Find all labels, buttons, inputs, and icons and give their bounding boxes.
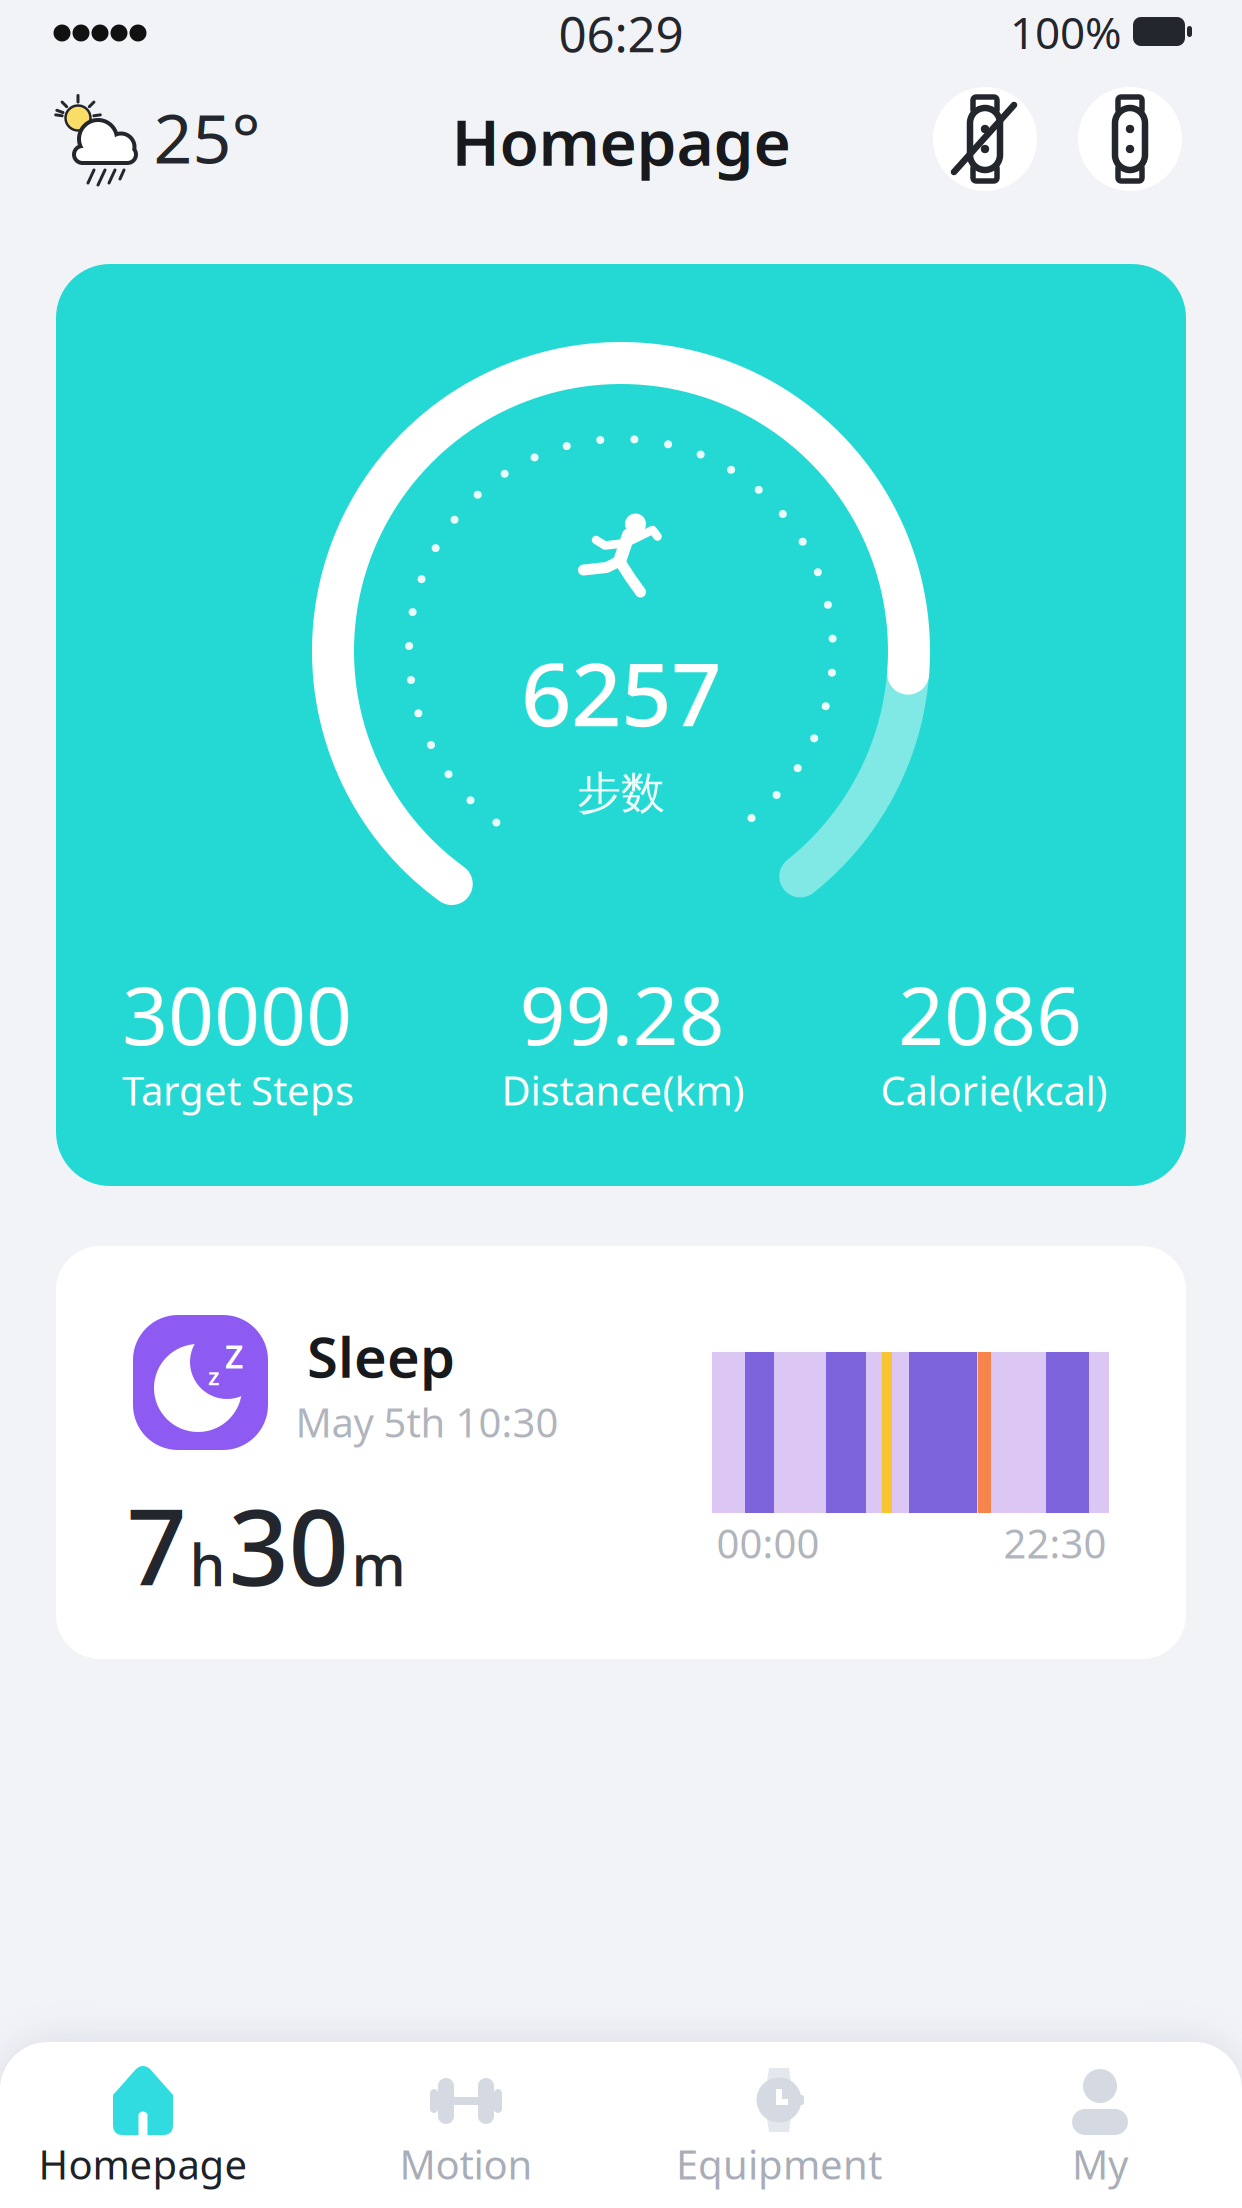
staticText: 7 — [126, 1475, 186, 1615]
staticText: Z — [225, 1335, 243, 1377]
staticText: Sleep — [307, 1319, 455, 1393]
button[interactable]: 6257 — [56, 264, 1186, 1186]
staticText: 6257 — [521, 634, 721, 750]
staticText: Homepage — [451, 98, 790, 183]
staticText: 22:30 — [1003, 1516, 1106, 1569]
staticText: Calorie(kcal) — [880, 1063, 1107, 1116]
staticText: 30000 — [122, 961, 352, 1067]
staticText: My — [1072, 2137, 1128, 2190]
staticText: Motion — [399, 2137, 532, 2190]
staticText: 2086 — [898, 961, 1082, 1067]
staticText: Target Steps — [122, 1063, 354, 1116]
button[interactable]: Homepage — [0, 2042, 310, 2208]
staticText: z — [208, 1360, 220, 1392]
button[interactable]: Disconnected band — [933, 87, 1037, 191]
staticText: 25° — [153, 92, 260, 182]
staticText: Equipment — [676, 2137, 882, 2190]
staticText: Distance(km) — [501, 1063, 744, 1116]
staticText: m — [351, 1526, 405, 1602]
button[interactable]: My — [931, 2042, 1241, 2208]
button[interactable]: Motion — [310, 2042, 620, 2208]
staticText: h — [189, 1526, 225, 1602]
button[interactable]: Band — [1078, 87, 1182, 191]
staticText: 步数 — [577, 766, 665, 820]
staticText: 30 — [228, 1475, 348, 1615]
staticText: 00:00 — [716, 1516, 819, 1569]
staticText: May 5th 10:30 — [295, 1395, 558, 1448]
staticText: 100% — [1010, 3, 1122, 61]
button[interactable]: Equipment — [621, 2042, 931, 2208]
staticText: 99.28 — [519, 961, 724, 1067]
staticText: Homepage — [38, 2137, 247, 2190]
staticText: 06:29 — [558, 0, 683, 66]
button[interactable]: z — [56, 1246, 1186, 1659]
